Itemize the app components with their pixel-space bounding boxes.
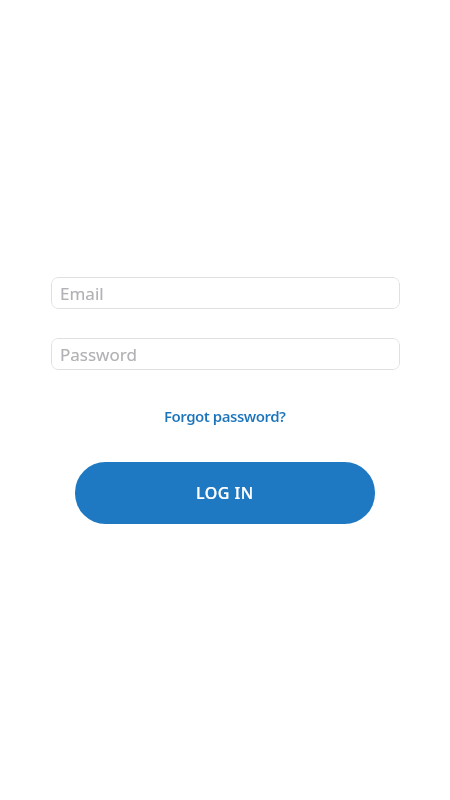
button[interactable]: Email	[51, 277, 400, 309]
staticText: Password	[60, 343, 137, 366]
staticText: Email	[60, 282, 104, 305]
button[interactable]: Password	[51, 338, 400, 370]
staticText: Forgot password?	[164, 406, 286, 426]
staticText: LOG IN	[196, 482, 254, 504]
button[interactable]: LOG IN	[75, 462, 375, 524]
button[interactable]: Forgot password?	[164, 406, 286, 426]
